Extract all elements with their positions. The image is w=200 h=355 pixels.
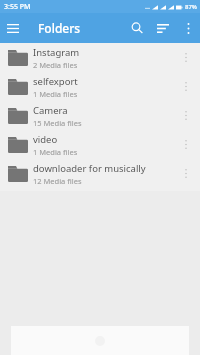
button[interactable]: Folder options bbox=[175, 130, 197, 159]
staticText: 1 Media files bbox=[33, 147, 78, 157]
staticText: 87% bbox=[185, 3, 197, 11]
staticText: 15 Media files bbox=[33, 118, 82, 128]
button[interactable]: Folder options bbox=[175, 72, 197, 101]
staticText: Instagram bbox=[33, 46, 80, 59]
button[interactable]: Search bbox=[124, 15, 150, 41]
button[interactable]: video bbox=[0, 130, 200, 159]
staticText: Camera bbox=[33, 104, 68, 117]
staticText: selfexport bbox=[33, 75, 78, 88]
button[interactable]: More options bbox=[176, 16, 200, 40]
button[interactable]: Open navigation drawer bbox=[0, 15, 26, 41]
staticText: 3:55 PM bbox=[4, 2, 31, 12]
staticText: 1 Media files bbox=[33, 89, 78, 99]
staticText: video bbox=[33, 133, 58, 146]
button[interactable]: Folder options bbox=[175, 159, 197, 188]
button[interactable]: Folder options bbox=[175, 43, 197, 72]
button[interactable]: downloader for musically bbox=[0, 159, 200, 188]
staticText: Folders bbox=[38, 20, 81, 36]
button[interactable]: selfexport bbox=[0, 72, 200, 101]
button[interactable]: Sort bbox=[150, 15, 176, 41]
staticText: 12 Media files bbox=[33, 176, 82, 186]
button[interactable]: Folder options bbox=[175, 101, 197, 130]
button[interactable]: Instagram bbox=[0, 43, 200, 72]
staticText: downloader for musically bbox=[33, 162, 146, 175]
staticText: 2 Media files bbox=[33, 60, 78, 70]
button[interactable]: Camera bbox=[0, 101, 200, 130]
